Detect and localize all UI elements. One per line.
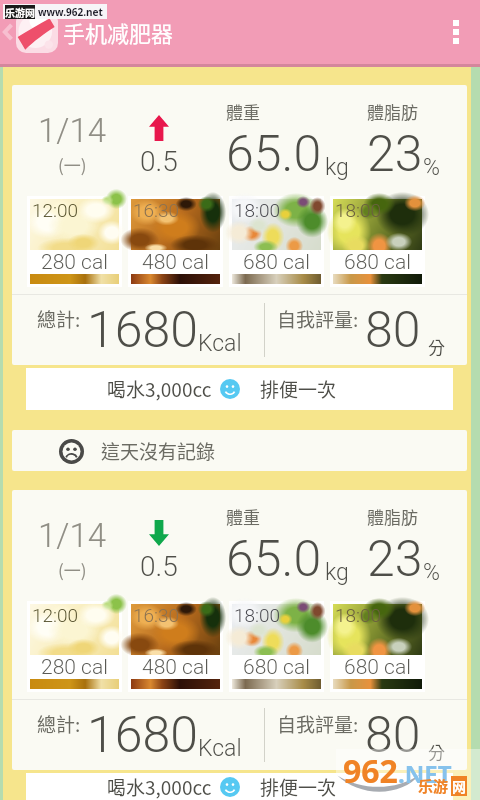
staticText: 體重 xyxy=(226,504,260,529)
staticText: 喝水3,000cc xyxy=(107,773,212,800)
staticText: 喝水3,000cc xyxy=(107,375,212,403)
staticText: 這天沒有記錄 xyxy=(101,437,216,465)
staticText: 18:00 xyxy=(335,199,382,221)
staticText: 排便一次 xyxy=(260,773,337,800)
staticText: 23 xyxy=(367,530,423,589)
button[interactable]: 1/14 xyxy=(12,490,467,770)
staticText: 排便一次 xyxy=(260,375,337,403)
staticText: 體脂肪 xyxy=(367,504,418,529)
staticText: 1/14 xyxy=(38,516,107,555)
staticText: 480 cal xyxy=(142,250,209,274)
staticText: 12:00 xyxy=(32,199,79,221)
staticText: Kcal xyxy=(198,330,242,357)
button[interactable]: 這天沒有記錄 xyxy=(12,430,467,471)
staticText: 1680 xyxy=(87,301,198,360)
button[interactable]: 1/14 xyxy=(12,85,467,365)
staticText: 18:00 xyxy=(234,604,281,626)
staticText: 65.0 xyxy=(226,530,322,589)
staticText: 0.5 xyxy=(140,145,178,178)
staticText: % xyxy=(423,154,441,181)
staticText: 65.0 xyxy=(226,125,322,184)
staticText: % xyxy=(423,559,441,586)
button[interactable]: More options xyxy=(432,0,480,64)
staticText: 280 cal xyxy=(41,250,108,274)
staticText: 18:00 xyxy=(234,199,281,221)
staticText: 网 xyxy=(452,776,466,796)
staticText: 16:30 xyxy=(133,604,180,626)
staticText: 總計: xyxy=(37,305,81,333)
staticText: www.962.net xyxy=(38,5,103,19)
staticText: .NET xyxy=(398,757,452,790)
staticText: 1680 xyxy=(87,706,198,765)
button[interactable]: Back xyxy=(0,0,16,64)
staticText: Kcal xyxy=(198,735,242,762)
staticText: 680 cal xyxy=(344,655,411,679)
staticText: 體重 xyxy=(226,99,260,124)
staticText: kg xyxy=(325,559,349,586)
button[interactable]: 12:00 xyxy=(30,199,119,284)
staticText: 1/14 xyxy=(38,111,107,150)
button[interactable]: 16:30 xyxy=(131,604,220,689)
staticText: 280 cal xyxy=(41,655,108,679)
staticText: 80 xyxy=(365,706,421,765)
staticText: 體脂肪 xyxy=(367,99,418,124)
staticText: 680 cal xyxy=(243,655,310,679)
staticText: 乐游 xyxy=(418,775,449,797)
staticText: 0.5 xyxy=(140,550,178,583)
staticText: 總計: xyxy=(37,710,81,738)
staticText: 自我評量: xyxy=(277,305,359,333)
staticText: 680 cal xyxy=(243,250,310,274)
staticText: 12:00 xyxy=(32,604,79,626)
staticText: 自我評量: xyxy=(277,710,359,738)
staticText: 480 cal xyxy=(142,655,209,679)
staticText: 80 xyxy=(365,301,421,360)
staticText: 分 xyxy=(428,334,445,359)
button[interactable]: 12:00 xyxy=(30,604,119,689)
staticText: 16:30 xyxy=(133,199,180,221)
button[interactable]: 喝水3,000cc xyxy=(26,773,453,800)
staticText: 分 xyxy=(428,739,445,764)
button[interactable]: 18:00 xyxy=(232,604,321,689)
staticText: kg xyxy=(325,154,349,181)
button[interactable]: 喝水3,000cc xyxy=(26,368,453,410)
staticText: (一) xyxy=(58,557,87,582)
button[interactable]: 18:00 xyxy=(333,604,422,689)
staticText: 乐游网 xyxy=(5,5,35,19)
button[interactable]: 16:30 xyxy=(131,199,220,284)
staticText: 962 xyxy=(343,749,398,793)
staticText: (一) xyxy=(58,152,87,177)
button[interactable]: 18:00 xyxy=(232,199,321,284)
staticText: 680 cal xyxy=(344,250,411,274)
staticText: 23 xyxy=(367,125,423,184)
staticText: 手机减肥器 xyxy=(63,16,174,48)
staticText: 18:00 xyxy=(335,604,382,626)
button[interactable]: 18:00 xyxy=(333,199,422,284)
